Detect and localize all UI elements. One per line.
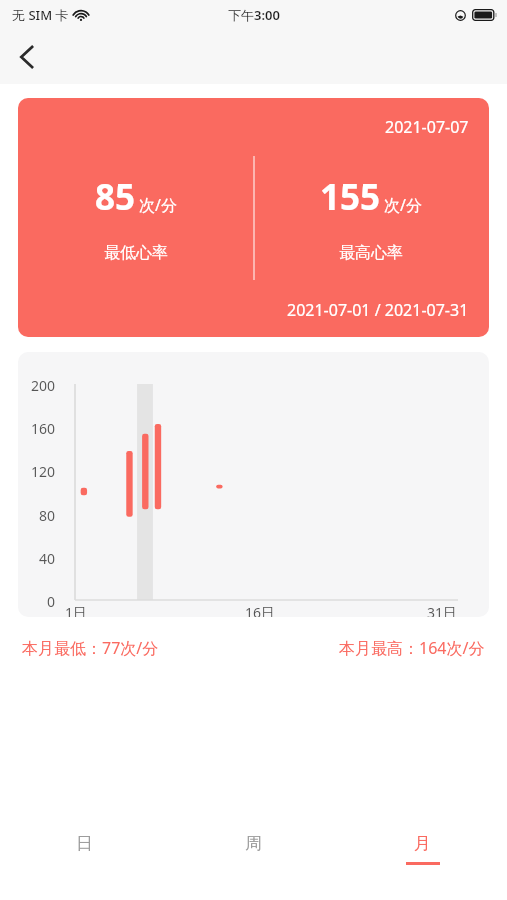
staticText: 80 (18, 506, 55, 525)
staticText: 200 (18, 376, 55, 395)
staticText: 155 (320, 173, 381, 221)
staticText: 本月最高：164次/分 (339, 637, 485, 659)
staticText: 2021-07-07 (385, 116, 469, 138)
staticText: 周 (245, 833, 262, 854)
staticText: 40 (18, 549, 55, 568)
staticText: 2021-07-01 / 2021-07-31 (287, 299, 469, 321)
staticText: 16日 (245, 603, 276, 617)
staticText: 无 SIM 卡 (12, 6, 69, 24)
staticText: 次/分 (384, 194, 422, 216)
staticText: 160 (18, 419, 55, 438)
staticText: 次/分 (139, 194, 177, 216)
button[interactable]: 周 (169, 820, 338, 878)
staticText: 31日 (427, 603, 458, 617)
button[interactable]: Back (0, 31, 52, 83)
staticText: 月 (414, 833, 431, 854)
staticText: 最高心率 (339, 243, 403, 263)
staticText: 120 (18, 462, 55, 481)
staticText: 1日 (65, 603, 88, 617)
staticText: 下午3:00 (228, 6, 280, 24)
staticText: 日 (76, 833, 93, 854)
button[interactable]: 日 (0, 820, 169, 878)
staticText: 85 (95, 173, 136, 221)
staticText: 最低心率 (104, 243, 168, 263)
button[interactable]: 2021-07-07 (18, 98, 489, 337)
staticText: 0 (18, 592, 55, 611)
button[interactable]: 月 (338, 820, 507, 878)
staticText: 本月最低：77次/分 (22, 637, 159, 659)
